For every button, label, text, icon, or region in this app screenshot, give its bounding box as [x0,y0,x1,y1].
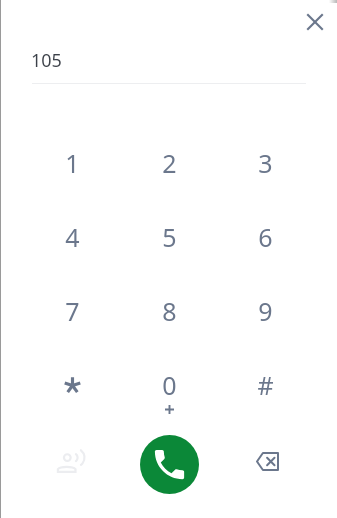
button[interactable]: Backspace [243,437,291,485]
staticText: 3 [258,146,273,180]
staticText: 1 [65,146,80,180]
staticText: 105 [31,48,62,73]
staticText: 4 [65,220,80,254]
button[interactable]: 3 [217,126,313,200]
staticText: 9 [258,294,273,328]
staticText: 0 [162,368,177,402]
staticText: 7 [65,294,80,328]
button[interactable]: 1 [24,126,121,200]
staticText: # [257,368,274,402]
staticText: 8 [162,294,177,328]
button[interactable]: 9 [217,274,313,348]
button[interactable]: 7 [24,274,121,348]
button[interactable]: Voice call [47,437,95,485]
button[interactable]: Close [299,6,331,38]
button[interactable]: 8 [121,274,217,348]
button[interactable]: # [217,348,313,422]
staticText: 5 [162,220,177,254]
button[interactable]: 5 [121,200,217,274]
button[interactable]: Call [140,435,199,494]
button[interactable]: 4 [24,200,121,274]
button[interactable]: 0 [121,348,217,422]
button[interactable]: 2 [121,126,217,200]
staticText: 2 [162,146,177,180]
button[interactable]: 6 [217,200,313,274]
staticText: 6 [258,220,273,254]
button[interactable] [24,348,121,422]
